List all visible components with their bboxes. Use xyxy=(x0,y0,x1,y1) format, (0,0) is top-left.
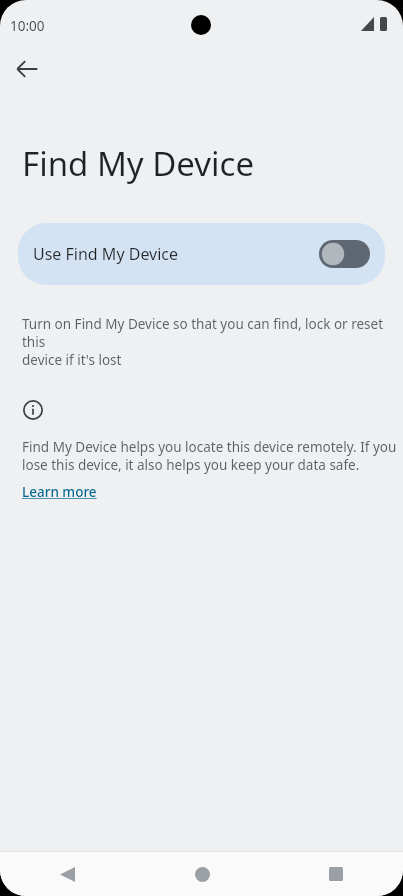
button[interactable]: Recent apps xyxy=(269,852,403,896)
button[interactable]: Use Find My Device toggle xyxy=(319,240,370,268)
staticText: Turn on Find My Device so that you can f… xyxy=(22,315,403,351)
button[interactable]: Use Find My Device xyxy=(18,223,385,285)
staticText: 10:00 xyxy=(10,17,45,35)
button[interactable]: Back xyxy=(0,852,135,896)
button[interactable]: Back xyxy=(8,50,46,88)
staticText: device if it's lost xyxy=(22,351,122,369)
staticText: Find My Device helps you locate this dev… xyxy=(22,438,397,456)
staticText: Learn more xyxy=(22,483,97,501)
staticText: Use Find My Device xyxy=(33,243,179,265)
button[interactable]: Home xyxy=(135,852,269,896)
staticText: Find My Device xyxy=(22,141,255,186)
staticText: lose this device, it also helps you keep… xyxy=(22,456,360,474)
button[interactable]: Learn more xyxy=(22,483,97,501)
